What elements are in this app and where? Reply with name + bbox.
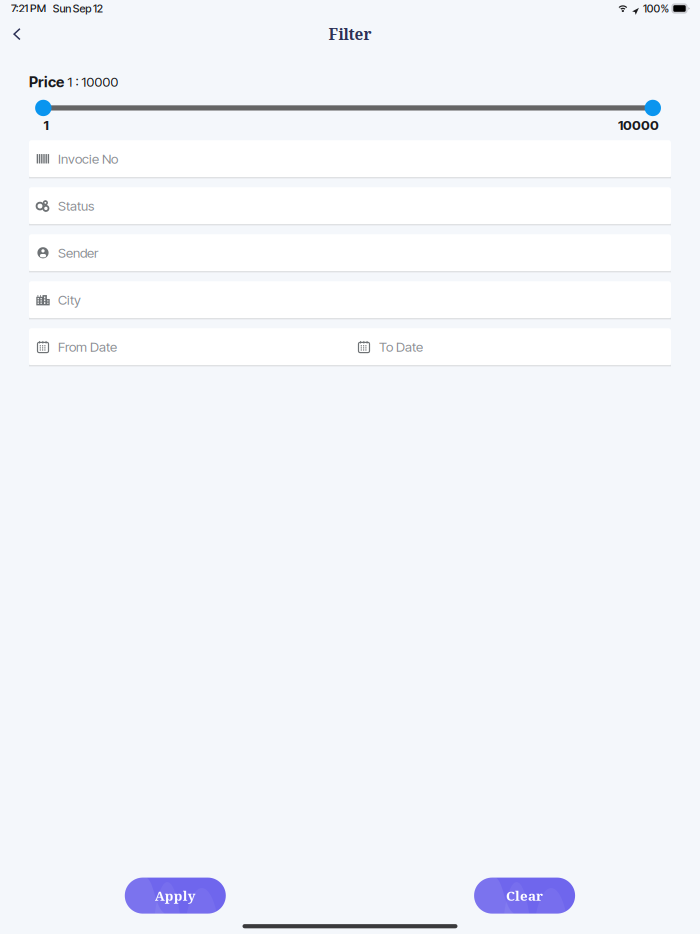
button[interactable]: To Date <box>350 328 671 365</box>
staticText: Sender <box>58 245 98 261</box>
staticText: 1 : 10000 <box>67 74 118 90</box>
staticText: To Date <box>379 339 423 355</box>
button[interactable]: Apply <box>125 878 226 914</box>
button[interactable]: Back <box>0 18 32 49</box>
button[interactable]: Status <box>0 187 700 225</box>
button[interactable]: City <box>0 281 700 319</box>
staticText: City <box>58 292 81 308</box>
staticText: 100% <box>643 2 669 15</box>
staticText: 7:21 PM <box>11 2 46 15</box>
staticText: Filter <box>328 24 371 44</box>
staticText: 1 <box>43 117 48 133</box>
button[interactable]: Sender <box>0 234 700 272</box>
staticText: Apply <box>155 886 196 905</box>
staticText: Clear <box>506 886 543 905</box>
staticText: Status <box>58 198 94 214</box>
staticText: Invocie No <box>58 151 118 167</box>
staticText: 10000 <box>618 117 659 133</box>
button[interactable]: Invocie No <box>0 140 700 178</box>
staticText: From Date <box>58 339 117 355</box>
staticText: Price <box>29 73 64 91</box>
button[interactable]: From Date <box>29 328 350 365</box>
button[interactable]: Clear <box>474 878 575 914</box>
staticText: Sun Sep 12 <box>53 2 103 15</box>
